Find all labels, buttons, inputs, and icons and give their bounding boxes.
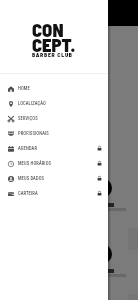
staticText: CEPT. bbox=[32, 33, 76, 55]
button[interactable]: MEUS HORÁRIOS bbox=[0, 156, 108, 171]
staticText: SERVIÇOS bbox=[18, 116, 38, 121]
button[interactable]: LOCALIZAÇÃO bbox=[0, 96, 108, 111]
button[interactable]: MEUS DADOS bbox=[0, 171, 108, 186]
staticText: MEUS HORÁRIOS bbox=[18, 161, 52, 166]
staticText: MEUS DADOS bbox=[18, 176, 45, 181]
staticText: HOME bbox=[18, 86, 30, 91]
button[interactable]: CARTEIRA bbox=[0, 186, 108, 201]
staticText: CARTEIRA bbox=[18, 191, 38, 196]
button[interactable]: HOME bbox=[0, 81, 108, 96]
staticText: AGENDAR bbox=[18, 146, 38, 151]
other: Bloqueado bbox=[97, 146, 102, 151]
other: Bloqueado bbox=[97, 176, 102, 181]
button[interactable]: SERVIÇOS bbox=[0, 111, 108, 126]
staticText: BARBER CLUB bbox=[32, 51, 73, 58]
button[interactable]: PROFISSIONAIS bbox=[0, 126, 108, 141]
staticText: CON bbox=[32, 18, 64, 40]
button[interactable] bbox=[0, 0, 138, 300]
button[interactable]: AGENDAR bbox=[0, 141, 108, 156]
staticText: PROFISSIONAIS bbox=[18, 131, 49, 136]
other: Bloqueado bbox=[97, 161, 102, 166]
other: Bloqueado bbox=[97, 191, 102, 196]
staticText: LOCALIZAÇÃO bbox=[18, 101, 46, 106]
